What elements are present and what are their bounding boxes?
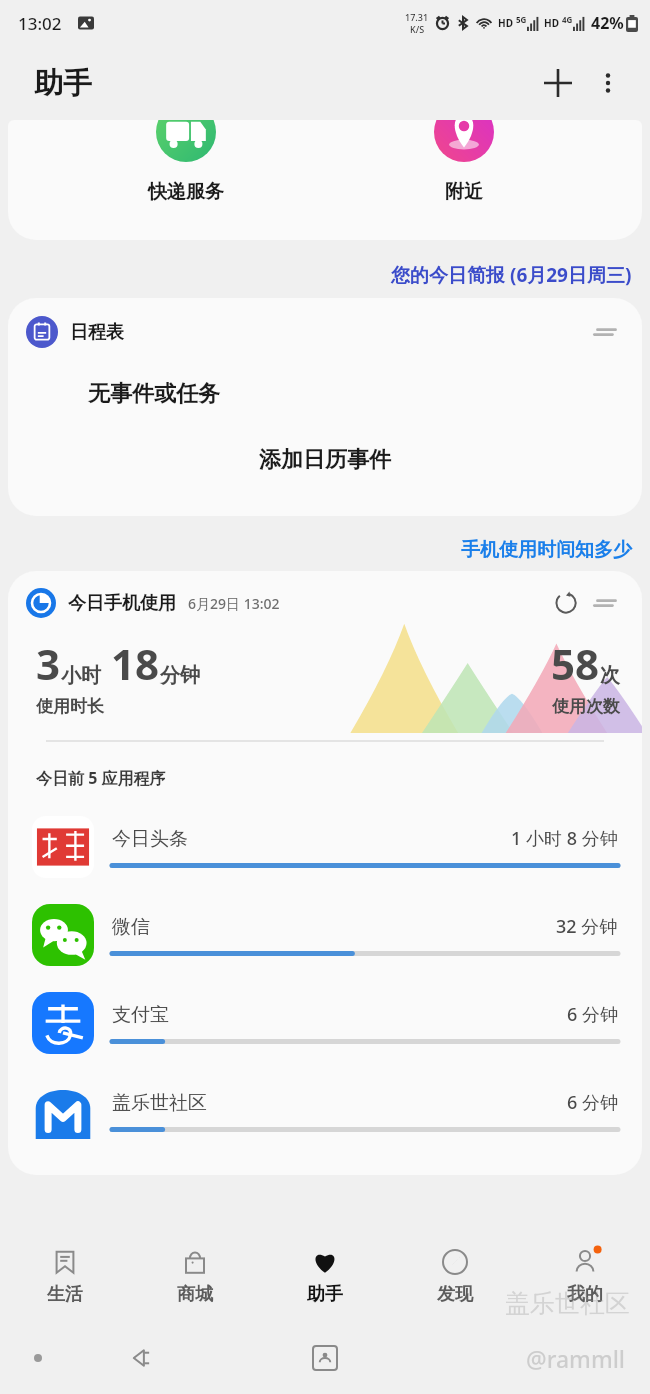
staticText: 盖乐世社区 [112,1091,207,1115]
staticText: 发现 [437,1283,473,1306]
staticText: 日程表 [70,321,124,344]
staticText: 3 [36,635,61,692]
staticText: 商城 [177,1283,213,1306]
button[interactable]: 手机使用时间知多少 [461,538,632,562]
staticText: 32 分钟 [556,914,618,939]
staticText: 5G [516,14,527,25]
staticText: 无事件或任务 [88,380,220,408]
button[interactable]: 日程表 [8,298,642,516]
staticText: 4G [562,14,573,25]
button[interactable]: 盖乐世社区 [8,1067,642,1155]
button[interactable]: 支付宝 [8,979,642,1067]
staticText: 今日头条 [112,827,188,851]
button[interactable]: 商城 [130,1230,260,1322]
staticText: 分钟 [160,663,200,688]
staticText: 今日手机使用 [68,592,176,615]
staticText: K/S [410,23,425,35]
staticText: 58 [551,635,600,692]
staticText: 42% [591,12,624,34]
staticText: HD [544,16,559,30]
staticText: 6 分钟 [567,1090,618,1115]
staticText: 使用时长 [36,696,104,717]
staticText: HD [498,16,513,30]
staticText: 微信 [112,915,150,939]
button[interactable]: More options [584,59,632,107]
staticText: 17.31 [405,11,429,23]
staticText: 6月29日 13:02 [188,594,280,613]
staticText: 使用次数 [552,696,620,717]
button[interactable]: 附近 [364,120,564,240]
staticText: 小时 [61,663,101,688]
staticText: 附近 [445,180,483,204]
button[interactable]: 今日头条 [8,803,642,891]
button[interactable]: Reorder [588,314,624,350]
button[interactable]: Add [532,57,584,109]
button[interactable]: 微信 [8,891,642,979]
staticText: 今日前 5 应用程序 [36,767,166,789]
staticText: 快递服务 [148,180,224,204]
staticText: 18 [111,635,160,692]
button[interactable]: Recents [302,1335,348,1381]
button[interactable]: 助手 [260,1230,390,1322]
button[interactable]: 生活 [0,1230,130,1322]
staticText: 盖乐世社区 [505,1288,630,1319]
button[interactable]: 发现 [390,1230,520,1322]
staticText: 6 分钟 [567,1002,618,1027]
button[interactable]: 添加日历事件 [259,446,391,474]
staticText: 助手 [307,1283,343,1306]
staticText: 次 [600,663,620,688]
button[interactable]: 我的 [520,1230,650,1322]
staticText: 13:02 [18,12,62,35]
staticText: 1 小时 8 分钟 [511,826,618,851]
button[interactable]: Back [118,1335,164,1381]
button[interactable]: 您的今日简报 (6月29日周三) [391,262,632,288]
staticText: @rammll [526,1343,626,1374]
button[interactable]: 快递服务 [86,120,286,240]
staticText: 助手 [34,65,92,102]
staticText: 支付宝 [112,1003,169,1027]
button[interactable]: Reorder [588,585,624,621]
staticText: 生活 [47,1283,83,1306]
button[interactable]: Refresh [548,585,584,621]
staticText: 我的 [567,1283,603,1306]
